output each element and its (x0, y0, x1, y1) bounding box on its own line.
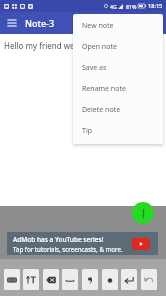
button[interactable]: Space (62, 269, 78, 290)
staticText: Note-3 (25, 17, 55, 29)
button[interactable]: New note (73, 15, 163, 36)
button[interactable]: Delete note (73, 99, 163, 120)
button[interactable]: Enter (121, 269, 137, 290)
button[interactable]: New note (132, 202, 154, 224)
button[interactable]: Period (102, 269, 118, 290)
button[interactable]: Tip (73, 120, 163, 141)
button[interactable]: Backspace (43, 269, 59, 290)
staticText: Open note (82, 42, 117, 52)
button[interactable]: Keyboard (4, 269, 20, 290)
button[interactable]: Save as (73, 57, 163, 78)
button[interactable]: Play YouTube video (132, 238, 150, 250)
button[interactable]: Undo (141, 269, 157, 290)
staticText: Delete note (82, 105, 121, 115)
staticText: 81% (126, 3, 137, 10)
button[interactable]: Rename note (73, 78, 163, 99)
button[interactable]: Text size (23, 269, 39, 290)
staticText: Tip (82, 126, 93, 136)
button[interactable]: Comma (82, 269, 98, 290)
staticText: 18:15 (148, 2, 163, 10)
staticText: 4G (110, 3, 117, 10)
staticText: Hello my friend welcome (4, 40, 98, 51)
button[interactable]: Open note (73, 36, 163, 57)
button[interactable]: AdMob has a YouTube series! (7, 232, 158, 255)
staticText: Save as (82, 63, 107, 73)
staticText: Rename note (82, 84, 126, 94)
button[interactable]: Open navigation drawer (4, 15, 20, 31)
staticText: Tap for tutorials, screencasts, & more. (13, 245, 123, 253)
staticText: AdMob has a YouTube series! (13, 235, 104, 244)
staticText: New note (82, 21, 114, 31)
